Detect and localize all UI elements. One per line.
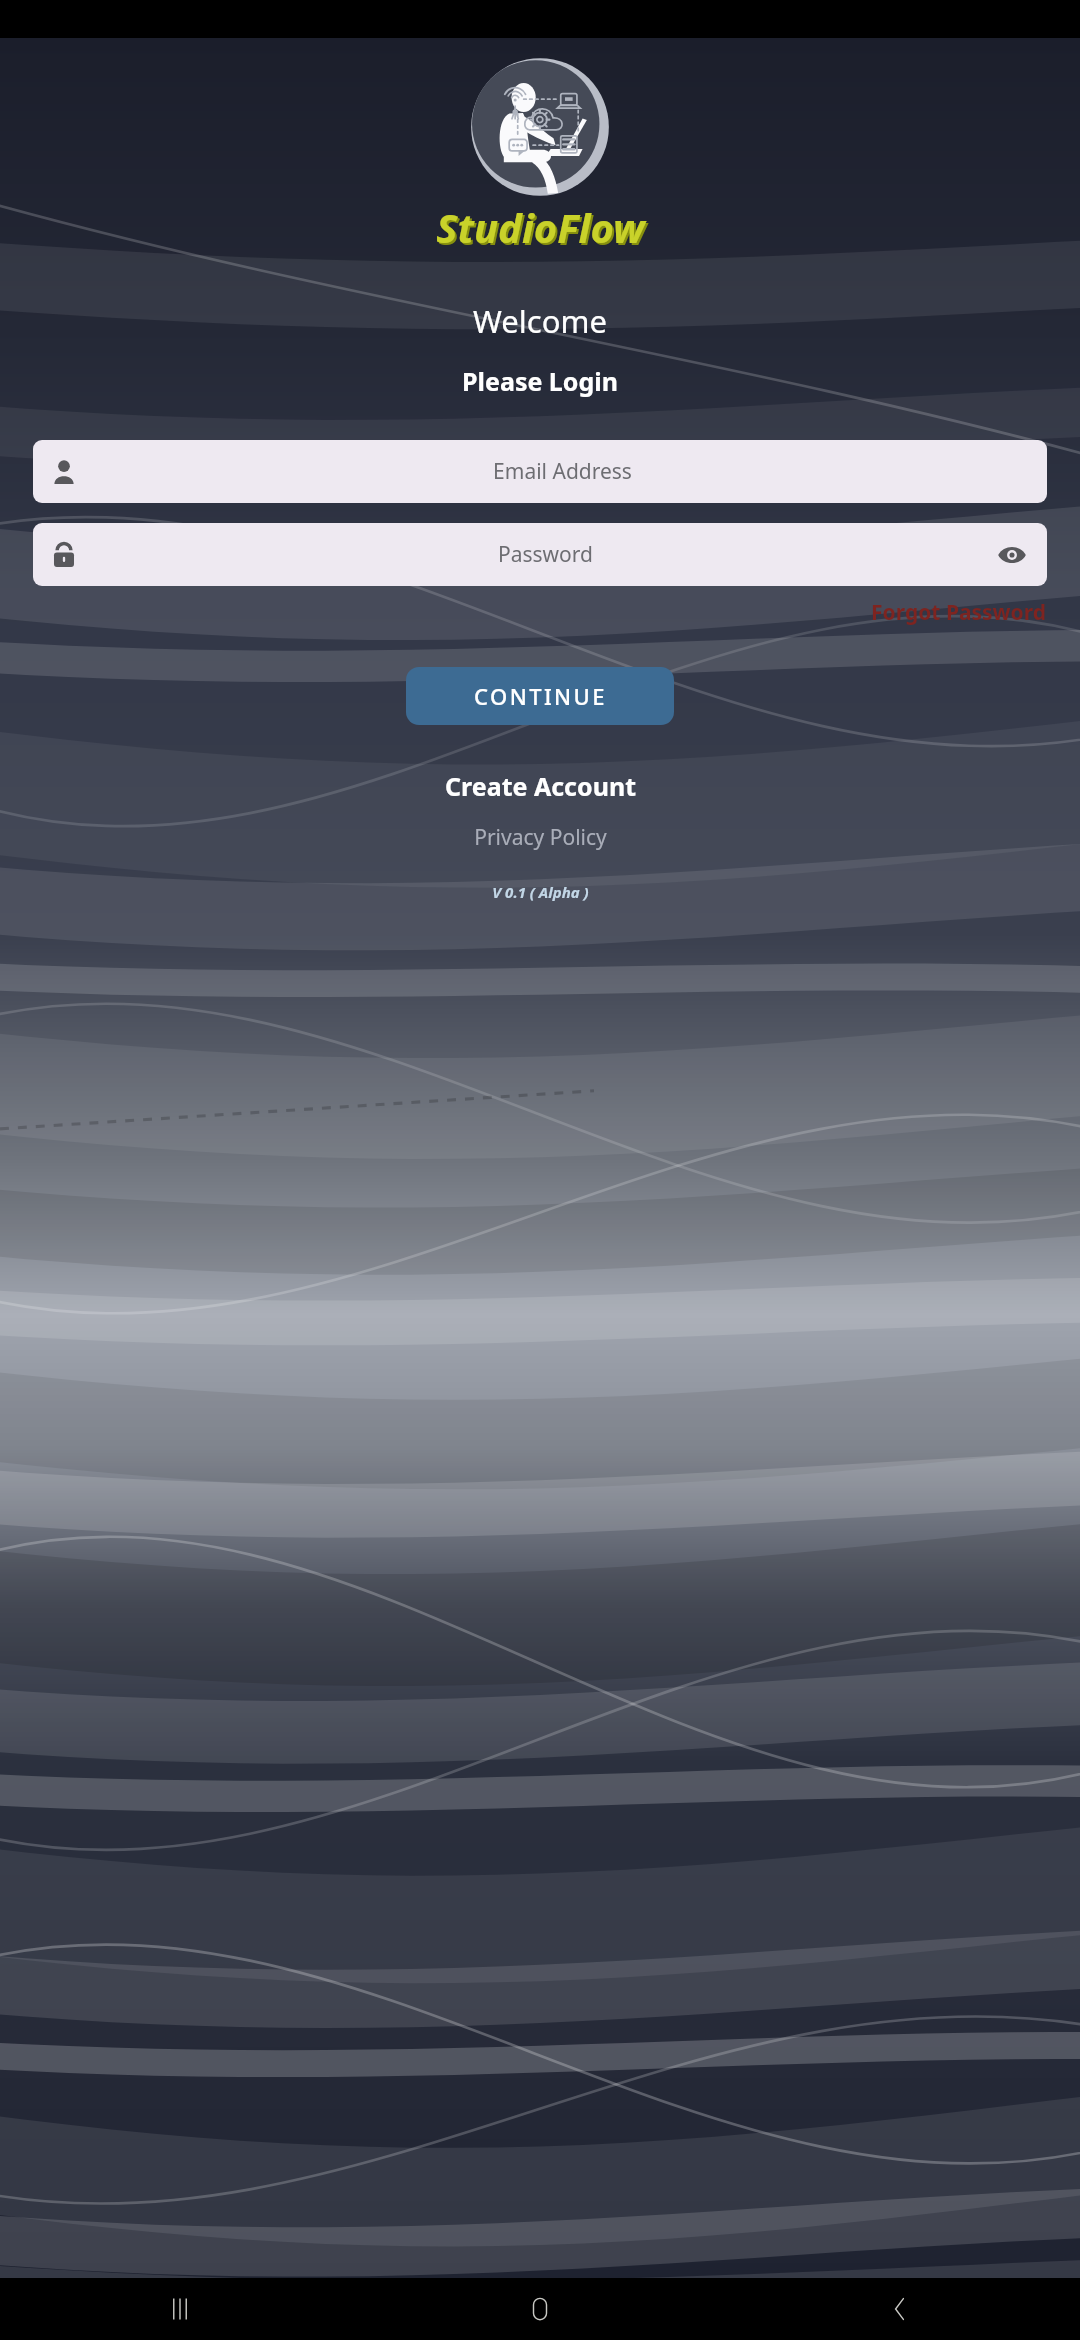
staticText: StudioFlow (438, 202, 647, 256)
staticText: Create Account (445, 769, 636, 803)
button[interactable]: Create Account (435, 765, 646, 807)
button[interactable]: Forgot Password (867, 594, 1050, 631)
staticText: StudioFlow (436, 200, 645, 254)
button[interactable]: Back (720, 2278, 1080, 2340)
staticText: Email Address (96, 457, 1029, 486)
button[interactable]: Privacy Policy (464, 819, 617, 856)
button[interactable]: Email Address (33, 440, 1047, 503)
staticText: Please Login (462, 364, 618, 398)
staticText: Forgot Password (871, 598, 1046, 627)
staticText: Password (96, 540, 995, 569)
staticText: Privacy Policy (474, 823, 607, 852)
staticText: Welcome (473, 300, 607, 342)
button[interactable]: CONTINUE (406, 667, 674, 725)
button[interactable]: Password (33, 523, 1047, 586)
button[interactable]: Show password (995, 538, 1029, 572)
staticText: CONTINUE (474, 681, 607, 711)
staticText: V 0.1 ( Alpha ) (492, 882, 589, 902)
button[interactable]: Recent apps (0, 2278, 360, 2340)
button[interactable]: Home (360, 2278, 720, 2340)
